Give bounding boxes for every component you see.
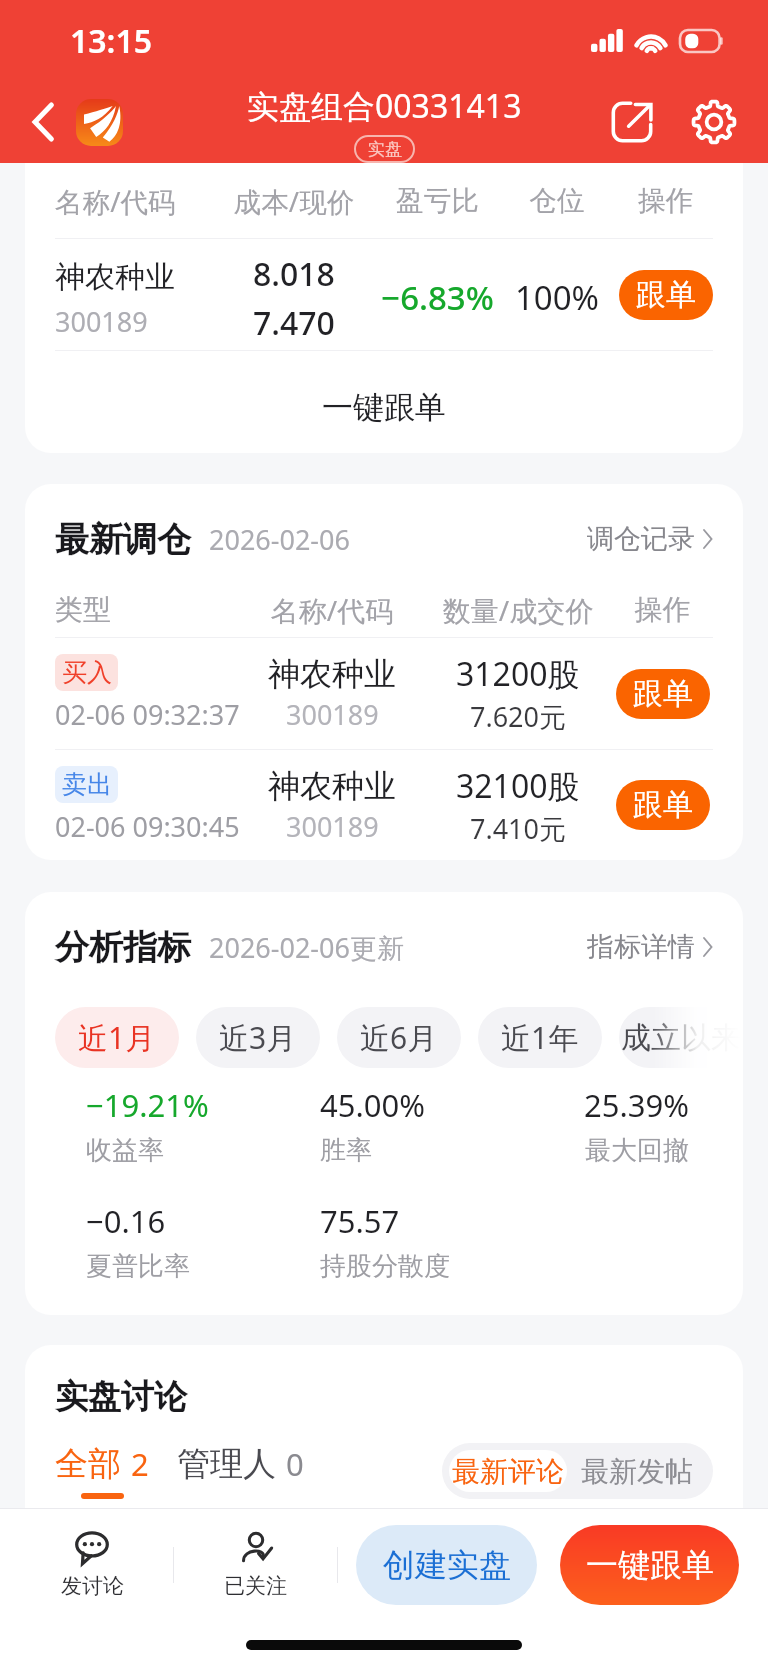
- button[interactable]: 最新评论: [449, 1450, 567, 1492]
- staticText: 7.470: [253, 301, 335, 345]
- staticText: −19.21%: [86, 1084, 209, 1126]
- button[interactable]: 成立以来: [619, 1007, 743, 1068]
- staticText: 调仓记录: [587, 522, 695, 556]
- staticText: 75.57: [320, 1200, 400, 1242]
- staticText: 跟单: [633, 675, 693, 713]
- staticText: 近3月: [219, 1017, 297, 1058]
- staticText: 8.018: [253, 252, 335, 296]
- button[interactable]: 跟单: [616, 780, 710, 830]
- staticText: 操作: [612, 592, 713, 627]
- button[interactable]: 近1月: [55, 1007, 179, 1068]
- staticText: 成立以来: [621, 1019, 741, 1057]
- button[interactable]: 创建实盘: [356, 1525, 537, 1605]
- staticText: 收益率: [86, 1134, 164, 1167]
- button[interactable]: Share: [600, 90, 664, 154]
- staticText: 300189: [55, 303, 148, 340]
- staticText: 一键跟单: [586, 1545, 714, 1585]
- staticText: 夏普比率: [86, 1250, 190, 1283]
- staticText: 实盘组合00331413: [247, 84, 522, 128]
- staticText: 已关注: [224, 1573, 287, 1599]
- staticText: 跟单: [633, 786, 693, 824]
- staticText: 2: [131, 1443, 149, 1485]
- button[interactable]: 近1年: [478, 1007, 602, 1068]
- staticText: −0.16: [86, 1200, 166, 1242]
- staticText: 神农种业: [55, 258, 175, 296]
- staticText: 25.39%: [584, 1084, 689, 1126]
- staticText: 管理人: [177, 1443, 276, 1485]
- staticText: 2026-02-06: [209, 521, 350, 558]
- staticText: 名称/代码: [240, 591, 424, 629]
- staticText: 实盘: [368, 139, 402, 160]
- button[interactable]: 跟单: [616, 669, 710, 719]
- staticText: 7.620元: [470, 698, 567, 735]
- staticText: 神农种业: [268, 766, 396, 806]
- staticText: 数量/成交价: [424, 591, 612, 629]
- staticText: 盈亏比: [379, 183, 496, 218]
- staticText: 45.00%: [320, 1084, 425, 1126]
- button[interactable]: 调仓记录: [587, 522, 713, 556]
- button[interactable]: 全部: [55, 1443, 149, 1499]
- button[interactable]: 已关注: [174, 1532, 337, 1599]
- staticText: 全部: [55, 1443, 121, 1485]
- staticText: 02-06 09:32:37: [55, 696, 240, 733]
- staticText: 成本/现价: [209, 182, 379, 220]
- staticText: 300189: [286, 808, 379, 845]
- button[interactable]: 指标详情: [587, 930, 713, 964]
- staticText: 指标详情: [587, 930, 695, 964]
- staticText: 7.410元: [470, 810, 567, 847]
- staticText: 100%: [496, 275, 618, 320]
- staticText: 近6月: [360, 1017, 438, 1058]
- button[interactable]: 一键跟单: [560, 1525, 739, 1605]
- button[interactable]: Back: [14, 93, 72, 151]
- staticText: 类型: [55, 592, 240, 627]
- staticText: 分析指标: [55, 926, 191, 969]
- staticText: 最新发帖: [581, 1454, 693, 1489]
- button[interactable]: Settings: [682, 90, 746, 154]
- staticText: 最大回撤: [585, 1134, 689, 1167]
- button[interactable]: 一键跟单: [25, 351, 743, 453]
- staticText: 31200股: [456, 652, 580, 696]
- staticText: 最新评论: [452, 1454, 564, 1489]
- staticText: 胜率: [320, 1134, 372, 1167]
- staticText: 32100股: [456, 764, 580, 808]
- staticText: 创建实盘: [383, 1545, 511, 1585]
- staticText: 02-06 09:30:45: [55, 808, 240, 845]
- staticText: −6.83%: [379, 275, 496, 320]
- staticText: 13:15: [70, 19, 153, 63]
- staticText: 买入: [62, 657, 112, 688]
- staticText: 2026-02-06更新: [209, 929, 404, 966]
- staticText: 持股分散度: [320, 1250, 450, 1283]
- staticText: 神农种业: [268, 654, 396, 694]
- staticText: 仓位: [496, 183, 618, 218]
- button[interactable]: 发讨论: [11, 1532, 173, 1599]
- staticText: 一键跟单: [322, 388, 446, 427]
- staticText: 近1月: [78, 1017, 156, 1058]
- staticText: 最新调仓: [55, 518, 191, 561]
- button[interactable]: 最新发帖: [567, 1450, 706, 1492]
- staticText: 发讨论: [61, 1573, 124, 1599]
- staticText: 0: [286, 1443, 304, 1485]
- button[interactable]: App logo: [76, 99, 123, 146]
- button[interactable]: 近3月: [196, 1007, 320, 1068]
- staticText: 近1年: [501, 1017, 579, 1058]
- button[interactable]: 跟单: [619, 270, 713, 320]
- button[interactable]: 管理人: [177, 1443, 304, 1485]
- staticText: 跟单: [636, 276, 696, 314]
- staticText: 操作: [618, 183, 713, 218]
- staticText: 名称/代码: [55, 182, 209, 220]
- button[interactable]: 近6月: [337, 1007, 461, 1068]
- staticText: 300189: [286, 696, 379, 733]
- staticText: 卖出: [62, 769, 112, 800]
- staticText: 实盘讨论: [55, 1376, 187, 1418]
